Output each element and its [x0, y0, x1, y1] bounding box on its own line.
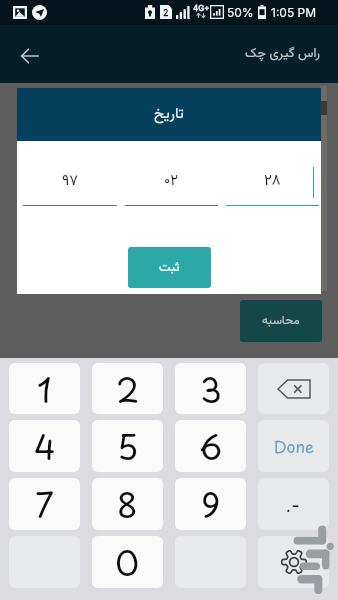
- button[interactable]: 1: [9, 363, 80, 414]
- staticText: 1: [37, 364, 52, 414]
- button[interactable]: 5: [92, 420, 163, 472]
- staticText: ↑↓: [196, 12, 207, 19]
- staticText: 7: [35, 479, 54, 529]
- staticText: 1:05 PM: [271, 5, 317, 20]
- staticText: .-: [286, 490, 301, 519]
- staticText: 4G+: [193, 3, 210, 13]
- staticText: 2: [116, 364, 140, 414]
- button[interactable]: Back: [12, 38, 48, 74]
- button[interactable]: Punctuation: [258, 478, 329, 530]
- button[interactable]: 3: [175, 363, 246, 414]
- button[interactable]: ثبت: [128, 247, 211, 288]
- staticText: ۹۷: [62, 170, 79, 193]
- staticText: تاریخ: [154, 103, 184, 126]
- staticText: 6: [199, 421, 223, 471]
- button[interactable]: Keyboard settings: [258, 536, 329, 588]
- staticText: محاسبه: [262, 312, 300, 331]
- staticText: 50%: [227, 5, 254, 20]
- button[interactable]: محاسبه: [240, 300, 322, 342]
- button[interactable]: Done: [258, 420, 329, 472]
- staticText: 5: [117, 421, 139, 471]
- button[interactable]: 4: [9, 420, 80, 472]
- button[interactable]: 2: [92, 363, 163, 414]
- staticText: Done: [273, 434, 315, 458]
- button[interactable]: 0: [92, 536, 163, 588]
- button[interactable]: 9: [175, 478, 246, 530]
- staticText: ثبت: [159, 258, 180, 278]
- staticText: 0: [115, 537, 140, 587]
- staticText: ۲۸: [264, 170, 281, 193]
- staticText: 9: [201, 479, 221, 529]
- staticText: 2: [163, 7, 169, 18]
- staticText: ۰۲: [164, 170, 179, 193]
- staticText: 3: [200, 364, 222, 414]
- button[interactable]: 6: [175, 420, 246, 472]
- staticText: راس گیری چک: [245, 44, 320, 64]
- button[interactable]: 8: [92, 478, 163, 530]
- button[interactable]: Backspace: [258, 363, 329, 414]
- button[interactable]: 7: [9, 478, 80, 530]
- staticText: 8: [117, 479, 138, 529]
- staticText: 4: [34, 421, 56, 471]
